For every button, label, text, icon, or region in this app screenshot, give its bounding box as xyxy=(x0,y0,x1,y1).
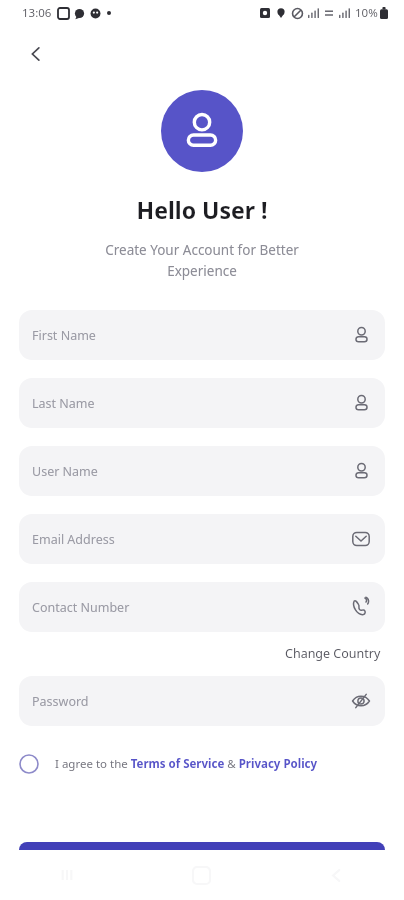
staticText: Hello User ! xyxy=(0,194,404,225)
button[interactable]: Change Country xyxy=(281,641,385,666)
staticText: User Name xyxy=(32,463,352,480)
button[interactable]: Back xyxy=(14,32,58,76)
button[interactable]: Email Address xyxy=(19,514,385,564)
staticText: Email Address xyxy=(32,531,351,548)
staticText: Contact Number xyxy=(32,599,351,616)
staticText: First Name xyxy=(32,327,352,344)
staticText: I agree to the Terms of Service & Privac… xyxy=(55,756,318,772)
button[interactable]: Password xyxy=(19,676,385,726)
staticText: 13:06 xyxy=(22,5,52,21)
button[interactable]: I agree to the Terms of Service & Privac… xyxy=(0,752,404,776)
button[interactable]: User Name xyxy=(19,446,385,496)
button[interactable]: First Name xyxy=(19,310,385,360)
button[interactable]: Sign Up xyxy=(19,842,385,850)
button[interactable]: Last Name xyxy=(19,378,385,428)
staticText: Password xyxy=(32,693,351,710)
button[interactable]: Contact Number xyxy=(19,582,385,632)
staticText: Create Your Account for Better Experienc… xyxy=(44,241,360,280)
staticText: Change Country xyxy=(285,645,381,662)
staticText: 10% xyxy=(355,5,378,21)
staticText: Last Name xyxy=(32,395,352,412)
